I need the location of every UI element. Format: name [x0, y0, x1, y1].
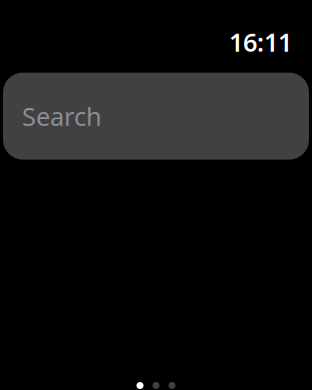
- staticText: 16:11: [229, 25, 292, 59]
- button[interactable]: Search: [3, 73, 309, 160]
- staticText: Search: [22, 99, 102, 133]
